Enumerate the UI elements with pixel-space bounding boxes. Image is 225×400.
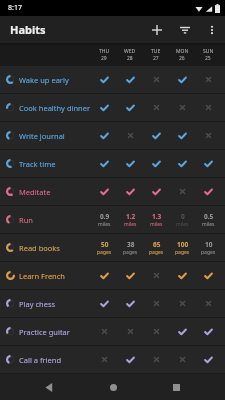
staticText: miles (124, 221, 137, 228)
button[interactable] (91, 178, 117, 205)
button[interactable] (98, 374, 128, 400)
button[interactable] (143, 346, 169, 373)
button[interactable]: Call a friend (0, 346, 225, 373)
button[interactable] (34, 374, 64, 400)
button[interactable] (91, 122, 117, 149)
button[interactable] (169, 318, 195, 345)
staticText: 26 (179, 55, 185, 62)
button[interactable]: 10 (195, 234, 221, 261)
button[interactable] (195, 178, 221, 205)
staticText: miles (98, 221, 111, 228)
staticText: pages (175, 249, 190, 256)
button[interactable]: Read books (0, 234, 225, 261)
button[interactable] (117, 122, 143, 149)
button[interactable] (117, 346, 143, 373)
staticText: 0.5 (204, 212, 214, 221)
button[interactable]: 0.5 (195, 206, 221, 233)
button[interactable]: 50 (91, 234, 117, 261)
button[interactable] (169, 346, 195, 373)
staticText: Play chess (19, 299, 56, 309)
button[interactable] (195, 318, 221, 345)
staticText: 1.3 (152, 212, 162, 221)
staticText: pages (149, 249, 164, 256)
button[interactable] (117, 66, 143, 93)
button[interactable] (145, 18, 169, 42)
button[interactable] (169, 178, 195, 205)
button[interactable] (195, 290, 221, 317)
button[interactable] (143, 150, 169, 177)
staticText: SUN (203, 48, 214, 55)
button[interactable] (91, 346, 117, 373)
button[interactable] (143, 318, 169, 345)
staticText: THU (99, 48, 110, 55)
button[interactable] (169, 122, 195, 149)
staticText: 1.2 (126, 212, 136, 221)
button[interactable] (91, 290, 117, 317)
button[interactable] (143, 290, 169, 317)
button[interactable] (169, 66, 195, 93)
staticText: pages (201, 249, 216, 256)
staticText: WED (124, 48, 136, 55)
button[interactable]: Wake up early (0, 66, 225, 93)
button[interactable]: 38 (117, 234, 143, 261)
button[interactable]: Write journal (0, 122, 225, 149)
button[interactable] (143, 66, 169, 93)
staticText: Habits (10, 22, 46, 37)
button[interactable]: Track time (0, 150, 225, 177)
button[interactable] (91, 318, 117, 345)
staticText: Track time (19, 159, 56, 169)
button[interactable] (195, 346, 221, 373)
button[interactable]: 100 (169, 234, 195, 261)
button[interactable] (201, 19, 223, 41)
button[interactable] (143, 94, 169, 121)
staticText: Cook healthy dinner (19, 103, 91, 113)
button[interactable] (195, 262, 221, 289)
button[interactable] (195, 122, 221, 149)
button[interactable]: Run (0, 206, 225, 233)
staticText: Call a friend (19, 355, 62, 365)
button[interactable] (91, 94, 117, 121)
button[interactable]: 0.9 (91, 206, 117, 233)
button[interactable] (169, 150, 195, 177)
button[interactable]: 1.3 (143, 206, 169, 233)
button[interactable]: Learn French (0, 262, 225, 289)
button[interactable] (117, 290, 143, 317)
button[interactable] (195, 66, 221, 93)
button[interactable]: Cook healthy dinner (0, 94, 225, 121)
staticText: 0 (181, 212, 185, 221)
button[interactable] (169, 262, 195, 289)
button[interactable]: Meditate (0, 178, 225, 205)
staticText: miles (150, 221, 163, 228)
button[interactable] (161, 374, 191, 400)
button[interactable] (117, 178, 143, 205)
button[interactable] (117, 262, 143, 289)
button[interactable] (91, 150, 117, 177)
button[interactable] (195, 150, 221, 177)
button[interactable]: Practice guitar (0, 318, 225, 345)
staticText: Wake up early (19, 75, 69, 85)
button[interactable] (117, 318, 143, 345)
button[interactable] (173, 18, 197, 42)
staticText: 0.9 (100, 212, 110, 221)
button[interactable] (143, 122, 169, 149)
staticText: Practice guitar (19, 327, 70, 337)
button[interactable] (117, 94, 143, 121)
button[interactable]: 1.2 (117, 206, 143, 233)
button[interactable] (91, 262, 117, 289)
button[interactable] (169, 290, 195, 317)
button[interactable] (195, 94, 221, 121)
button[interactable] (143, 262, 169, 289)
staticText: Meditate (19, 187, 51, 197)
staticText: 38 (127, 240, 135, 249)
button[interactable]: Play chess (0, 290, 225, 317)
staticText: TUE (151, 48, 161, 55)
button[interactable]: 65 (143, 234, 169, 261)
button[interactable] (143, 178, 169, 205)
button[interactable] (117, 150, 143, 177)
staticText: pages (123, 249, 138, 256)
button[interactable] (169, 94, 195, 121)
staticText: 50 (101, 240, 109, 249)
button[interactable] (91, 66, 117, 93)
button[interactable]: 0 (169, 206, 195, 233)
staticText: MON (176, 48, 189, 55)
